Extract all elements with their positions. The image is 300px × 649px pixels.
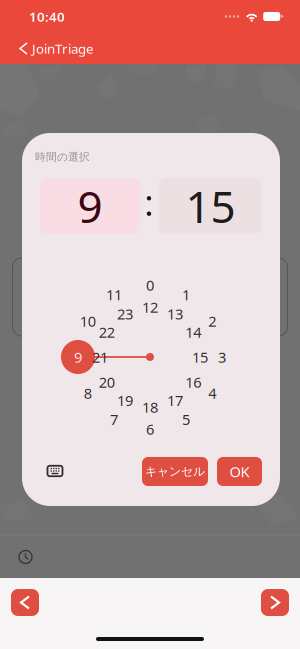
button[interactable]: Next xyxy=(261,589,289,616)
staticText: 9 xyxy=(74,347,82,367)
staticText: JoinTriage xyxy=(32,40,94,57)
staticText: 2 xyxy=(208,311,216,331)
staticText: 8 xyxy=(84,383,92,403)
staticText: 17 xyxy=(167,391,183,410)
staticText: 4 xyxy=(208,383,216,403)
staticText: 3 xyxy=(218,347,226,367)
button[interactable]: 15 xyxy=(159,178,262,234)
button[interactable]: OK xyxy=(217,457,262,486)
staticText: 15 xyxy=(185,177,235,235)
staticText: 12 xyxy=(142,297,158,317)
staticText: 10:40 xyxy=(29,8,65,25)
staticText: 7 xyxy=(110,410,118,429)
staticText: キャンセル xyxy=(145,464,205,479)
staticText: 5 xyxy=(182,410,190,429)
button[interactable]: Switch to text input xyxy=(40,457,70,485)
button[interactable]: JoinTriage xyxy=(0,33,104,64)
staticText: 時間の選択 xyxy=(35,150,90,163)
staticText: OK xyxy=(229,462,249,481)
staticText: 15 xyxy=(192,347,208,367)
button[interactable]: 9 xyxy=(40,178,140,234)
staticText: 13 xyxy=(167,304,183,323)
staticText: 6 xyxy=(146,419,154,439)
staticText: 19 xyxy=(117,391,133,410)
staticText: 14 xyxy=(185,322,201,342)
button[interactable]: Previous xyxy=(11,589,39,616)
staticText: 9 xyxy=(77,177,102,235)
staticText: 1 xyxy=(182,285,190,304)
staticText: 23 xyxy=(117,304,133,323)
staticText: 22 xyxy=(99,322,115,342)
staticText: 16 xyxy=(185,372,201,392)
button[interactable]: キャンセル xyxy=(142,457,208,486)
staticText: 18 xyxy=(142,397,158,417)
staticText: 21 xyxy=(92,347,108,367)
staticText: 20 xyxy=(99,372,115,392)
staticText: 0 xyxy=(146,275,154,295)
staticText: 11 xyxy=(106,285,122,304)
staticText: 10 xyxy=(80,311,96,331)
